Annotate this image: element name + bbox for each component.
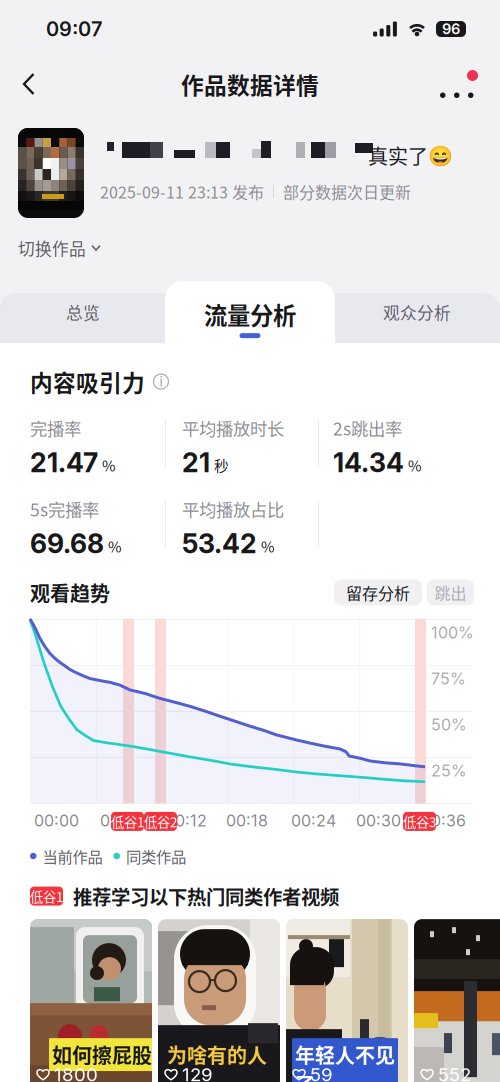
staticText: % (108, 535, 122, 557)
staticText: 平均播放占比 (182, 496, 284, 521)
staticText: 低谷2 (144, 812, 177, 831)
staticText: 00:24 (291, 811, 336, 830)
staticText: 平均播放时长 (182, 415, 284, 440)
staticText: 1800 (54, 1063, 98, 1082)
staticText: % (102, 454, 116, 476)
staticText: 总览 (66, 300, 100, 324)
staticText: % (261, 535, 275, 557)
staticText: 观众分析 (383, 300, 451, 324)
staticText: 秒 (214, 454, 229, 476)
staticText: 观看趋势 (30, 578, 110, 607)
staticText: 低谷1 (30, 886, 63, 906)
staticText: 部分数据次日更新 (283, 180, 411, 203)
staticText: 完播率 (30, 415, 81, 440)
staticText: 50% (431, 715, 467, 734)
button[interactable]: 观众分析 (334, 293, 500, 343)
staticText: 低谷3 (403, 812, 436, 831)
staticText: 流量分析 (204, 297, 296, 331)
button[interactable]: 跳出 (427, 579, 474, 605)
staticText: 推荐学习以下热门同类作者视频 (73, 882, 339, 910)
staticText: 跳出 (434, 581, 466, 604)
staticText: 21.47 (30, 446, 98, 479)
button[interactable]: 切换作品 (18, 218, 101, 268)
staticText: 552 (438, 1063, 471, 1082)
staticText: 如何擦屁股 (52, 1040, 152, 1069)
staticText: 75% (431, 669, 466, 688)
staticText: 21 (182, 446, 210, 479)
staticText: 69.68 (30, 527, 104, 560)
staticText: 低谷1 (111, 812, 144, 831)
staticText: 作品数据详情 (181, 68, 319, 100)
staticText: 00:30 (356, 811, 401, 830)
staticText: 53.42 (182, 527, 257, 560)
button[interactable]: 留存分析 (334, 579, 422, 605)
staticText: 5s完播率 (30, 496, 99, 521)
staticText: i (159, 373, 162, 390)
button[interactable]: 总览 (0, 293, 166, 343)
staticText: 留存分析 (346, 581, 410, 604)
staticText: 同类作品 (126, 845, 186, 867)
staticText: 59 (310, 1063, 333, 1082)
staticText: 当前作品 (42, 845, 102, 867)
button[interactable]: 流量分析 (165, 281, 335, 343)
staticText: 2025-09-11 23:13 发布 (100, 180, 264, 203)
staticText: 00:36 (421, 811, 466, 830)
staticText: 00:18 (226, 811, 268, 830)
button[interactable]: More options (429, 63, 485, 105)
button[interactable]: Back (9, 63, 49, 104)
staticText: 00:12 (165, 811, 207, 830)
staticText: 129 (182, 1063, 213, 1082)
staticText: 年轻人不见了 (295, 1040, 395, 1082)
staticText: 14.34 (333, 446, 404, 479)
staticText: 96 (442, 20, 460, 38)
staticText: 00:06 (100, 811, 145, 830)
staticText: % (408, 454, 422, 476)
staticText: 真实了😄 (368, 141, 453, 170)
staticText: 2s跳出率 (333, 415, 402, 440)
staticText: 切换作品 (18, 236, 86, 260)
staticText: 25% (431, 761, 467, 780)
staticText: 09:07 (46, 17, 102, 41)
staticText: 00:00 (34, 811, 79, 830)
staticText: 为啥有的人 (167, 1040, 267, 1069)
staticText: 100% (431, 623, 474, 642)
staticText: 内容吸引力 (30, 365, 145, 398)
